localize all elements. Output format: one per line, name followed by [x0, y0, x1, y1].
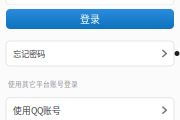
staticText: 使用QQ账号: [13, 104, 61, 116]
button[interactable]: 使用QQ账号: [6, 98, 174, 120]
staticText: 登录: [80, 12, 100, 26]
button[interactable]: 登录: [6, 9, 174, 29]
button[interactable]: 忘记密码: [6, 41, 174, 66]
staticText: 使用其它平台账号登录: [8, 79, 78, 89]
staticText: 忘记密码: [13, 47, 45, 59]
